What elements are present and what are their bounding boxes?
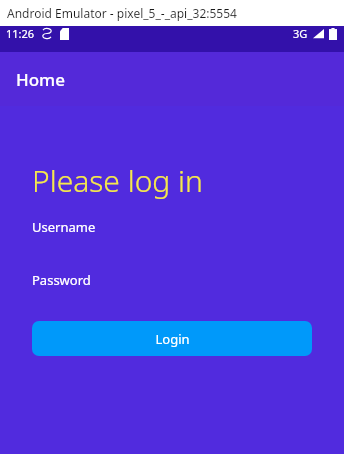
staticText: Home <box>16 68 65 91</box>
staticText: Password <box>32 271 91 289</box>
button[interactable]: Password <box>32 260 312 300</box>
staticText: 3G <box>293 26 308 41</box>
staticText: Android Emulator - pixel_5_-_api_32:5554 <box>7 5 237 21</box>
staticText: Login <box>155 330 190 348</box>
staticText: Please log in <box>32 160 203 201</box>
button[interactable]: Login <box>32 321 312 356</box>
staticText: 11:26 <box>6 26 35 41</box>
staticText: Username <box>32 218 96 236</box>
button[interactable]: Username <box>32 207 312 247</box>
